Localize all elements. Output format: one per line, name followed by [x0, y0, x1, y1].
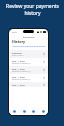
staticText: Review your payments [6, 3, 59, 10]
staticText: Mar 1, 2021 [12, 67, 26, 70]
staticText: History [12, 39, 26, 44]
staticText: Regular Cheque (1) [12, 70, 31, 73]
button[interactable]: Pay [29, 107, 37, 115]
button[interactable]: Mar 1, 2021 [9, 82, 48, 87]
button[interactable]: Mar 1, 2021 [9, 66, 48, 74]
staticText: history [24, 10, 41, 17]
button[interactable]: Pending [9, 50, 48, 58]
staticText: Mar 3, 2021 [12, 54, 24, 57]
staticText: Payments [23, 35, 35, 38]
staticText: 9:41 [12, 30, 17, 33]
staticText: Regular Cheque (1) [12, 62, 31, 65]
staticText: Pending [12, 51, 22, 54]
staticText: Regular Cheque (1) [12, 78, 31, 81]
button[interactable]: More [39, 107, 47, 115]
button[interactable]: How to resolve payment issues [12, 45, 48, 48]
staticText: How to resolve payment issues [12, 45, 46, 48]
button[interactable]: Home [10, 107, 18, 115]
staticText: Mar 1, 2021 [12, 75, 26, 78]
staticText: Mar 1, 2021 [12, 83, 26, 86]
button[interactable]: Mar 1, 2021 [9, 58, 48, 66]
button[interactable]: Accounts [20, 107, 28, 115]
button[interactable]: Mar 1, 2021 [9, 74, 48, 82]
staticText: Mar 1, 2021 [12, 59, 26, 62]
